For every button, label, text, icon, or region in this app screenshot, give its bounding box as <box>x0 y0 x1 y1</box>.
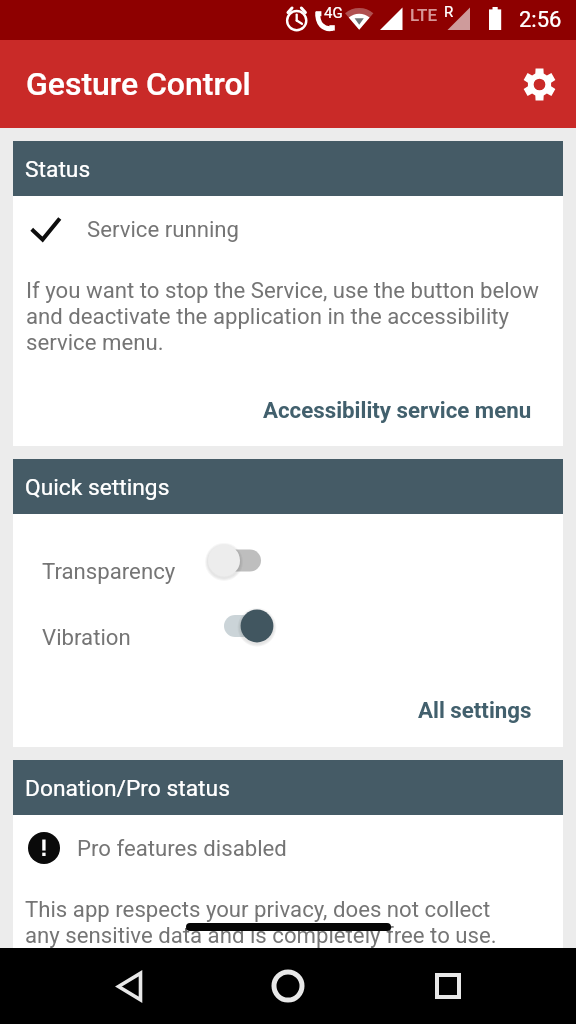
button[interactable]: Service running <box>13 196 563 262</box>
staticText: Status <box>25 156 91 183</box>
staticText: This app respects your privacy, does not… <box>25 896 497 948</box>
button[interactable]: Back <box>98 955 160 1017</box>
staticText: R <box>444 3 454 21</box>
staticText: If you want to stop the Service, use the… <box>26 277 539 355</box>
button[interactable]: Pro features disabled <box>13 815 563 881</box>
staticText: 2:56 <box>519 7 562 33</box>
staticText: Quick settings <box>25 474 170 501</box>
staticText: Service running <box>87 216 240 242</box>
staticText: Vibration <box>42 624 131 650</box>
staticText: Gesture Control <box>26 65 251 103</box>
staticText: 4G <box>324 4 343 22</box>
button[interactable]: Home <box>257 955 319 1017</box>
staticText: Pro features disabled <box>77 835 287 861</box>
staticText: LTE <box>410 5 438 25</box>
button[interactable]: Accessibility service menu <box>263 397 563 423</box>
button[interactable]: Vibration <box>13 604 563 670</box>
button[interactable]: Recent apps <box>417 955 479 1017</box>
staticText: Transparency <box>42 558 176 584</box>
button[interactable]: All settings <box>418 697 563 723</box>
staticText: Donation/Pro status <box>25 775 230 802</box>
button[interactable]: Settings <box>511 56 567 112</box>
button[interactable]: Transparency <box>13 538 563 604</box>
